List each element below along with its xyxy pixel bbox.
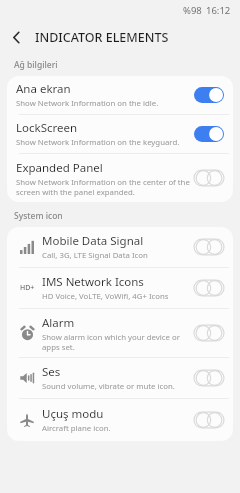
button[interactable]: Mobile Data Signal [7, 227, 233, 267]
button[interactable]: Alarm [7, 309, 233, 357]
button[interactable]: HD+ [7, 268, 233, 308]
staticText: Uçuş modu [42, 406, 104, 422]
button[interactable]: Toggle off [194, 169, 224, 187]
staticText: Sound volume, vibrate or mute icon. [42, 381, 175, 392]
staticText: Show Network Information on the center o… [16, 177, 190, 197]
button[interactable]: Ses [7, 358, 233, 398]
staticText: Call, 3G, LTE Signal Data Icon [42, 250, 148, 261]
staticText: Show Network Information on the idle. [16, 98, 159, 109]
staticText: %98 [183, 4, 202, 17]
staticText: Mobile Data Signal [42, 233, 144, 249]
staticText: System icon [14, 210, 63, 222]
staticText: Show Network Information on the keyguard… [16, 137, 180, 148]
button[interactable]: LockScreen [7, 115, 233, 153]
button[interactable]: Toggle off [194, 238, 224, 256]
staticText: INDICATOR ELEMENTS [35, 29, 169, 46]
button[interactable]: Toggle off [194, 369, 224, 387]
staticText: Alarm [42, 315, 75, 331]
button[interactable]: Toggle on [194, 86, 224, 104]
button[interactable]: Toggle off [194, 279, 224, 297]
staticText: Ana ekran [16, 81, 71, 97]
staticText: Show alarm icon which your device or app… [42, 332, 180, 352]
staticText: Expanded Panel [16, 160, 103, 176]
staticText: Aircraft plane icon. [42, 423, 111, 434]
staticText: 16:12 [206, 4, 231, 17]
staticText: LockScreen [16, 120, 78, 136]
staticText: HD+ [20, 283, 35, 293]
button[interactable]: Back [0, 21, 32, 53]
button[interactable]: Toggle on [194, 125, 224, 143]
staticText: Ses [42, 364, 61, 380]
button[interactable]: Ana ekran [7, 76, 233, 114]
button[interactable]: Uçuş modu [7, 399, 233, 441]
button[interactable]: Toggle off [194, 411, 224, 429]
staticText: HD Voice, VoLTE, VoWifi, 4G+ Icons [42, 291, 169, 302]
button[interactable]: Expanded Panel [7, 154, 233, 202]
staticText: IMS Network Icons [42, 274, 144, 290]
staticText: Ağ bilgileri [14, 59, 58, 71]
button[interactable]: Toggle off [194, 324, 224, 342]
